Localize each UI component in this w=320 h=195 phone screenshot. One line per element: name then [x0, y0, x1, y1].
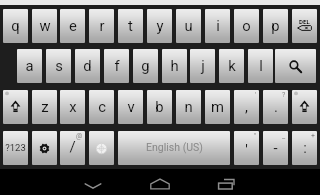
staticText: a	[25, 57, 34, 74]
staticText: DEL	[299, 18, 310, 25]
button[interactable]: v	[118, 90, 143, 124]
staticText: n	[184, 98, 193, 115]
staticText: English (US)	[146, 141, 203, 153]
button[interactable]: /	[60, 131, 85, 165]
button[interactable]: English (US)	[118, 131, 230, 165]
staticText: -	[273, 139, 278, 156]
button[interactable]: Search	[275, 49, 316, 83]
staticText: w	[39, 17, 51, 34]
staticText: i	[216, 17, 220, 34]
staticText: f	[114, 57, 120, 74]
staticText: @	[76, 132, 83, 140]
button[interactable]: Settings	[32, 131, 57, 165]
staticText: v	[127, 98, 135, 115]
staticText: h	[170, 57, 179, 74]
button[interactable]: b	[147, 90, 172, 124]
button[interactable]: u	[176, 9, 201, 43]
staticText: ?123	[5, 142, 26, 153]
button[interactable]: a	[17, 49, 42, 83]
button[interactable]: f	[104, 49, 129, 83]
button[interactable]: i	[205, 9, 230, 43]
button[interactable]: x	[60, 90, 85, 124]
staticText: .	[274, 98, 278, 115]
staticText: k	[228, 57, 236, 74]
button[interactable]: c	[89, 90, 114, 124]
button[interactable]: o	[234, 9, 259, 43]
button[interactable]: m	[205, 90, 230, 124]
button[interactable]: -	[263, 131, 288, 165]
staticText: +	[311, 132, 315, 140]
button[interactable]: g	[133, 49, 158, 83]
button[interactable]: s	[46, 49, 71, 83]
staticText: e	[69, 17, 77, 34]
button[interactable]: Shift	[292, 90, 317, 124]
staticText: d	[83, 57, 92, 74]
button[interactable]: n	[176, 90, 201, 124]
staticText: c	[98, 98, 106, 115]
staticText: p	[271, 17, 280, 34]
staticText: '	[255, 91, 257, 99]
staticText: m	[211, 98, 224, 115]
button[interactable]: t	[118, 9, 143, 43]
button[interactable]: :	[292, 131, 317, 165]
staticText: b	[155, 98, 164, 115]
button[interactable]: y	[147, 9, 172, 43]
staticText: u	[184, 17, 193, 34]
button[interactable]: Delete	[292, 9, 317, 43]
staticText: z	[41, 98, 49, 115]
button[interactable]: q	[3, 9, 28, 43]
staticText: o	[242, 17, 251, 34]
staticText: j	[201, 57, 205, 74]
button[interactable]: ,	[234, 90, 259, 124]
staticText: '	[245, 141, 248, 158]
staticText: ?	[282, 91, 286, 99]
staticText: :	[303, 139, 307, 156]
button[interactable]: Change keyboard	[89, 131, 114, 165]
staticText: "	[254, 132, 257, 140]
staticText: _	[282, 132, 286, 140]
staticText: ,	[245, 98, 248, 115]
staticText: q	[11, 17, 20, 34]
button[interactable]: r	[89, 9, 114, 43]
button[interactable]: Shift	[3, 90, 28, 124]
button[interactable]: l	[248, 49, 273, 83]
button[interactable]: j	[190, 49, 215, 83]
button[interactable]: Home	[144, 173, 176, 195]
button[interactable]: .	[263, 90, 288, 124]
button[interactable]: h	[162, 49, 187, 83]
staticText: y	[156, 17, 164, 34]
staticText: g	[141, 57, 150, 74]
button[interactable]: Recent apps	[210, 173, 242, 195]
button[interactable]: k	[219, 49, 244, 83]
button[interactable]: '	[234, 131, 259, 165]
staticText: r	[99, 17, 105, 34]
button[interactable]: z	[32, 90, 57, 124]
staticText: x	[69, 98, 77, 115]
staticText: s	[55, 57, 63, 74]
button[interactable]: d	[75, 49, 100, 83]
staticText: l	[259, 57, 263, 74]
button[interactable]: e	[60, 9, 85, 43]
button[interactable]: Hide keyboard	[77, 173, 109, 195]
button[interactable]: ?123	[3, 131, 28, 165]
staticText: /	[69, 138, 76, 156]
staticText: t	[128, 17, 133, 34]
button[interactable]: p	[263, 9, 288, 43]
button[interactable]: w	[32, 9, 57, 43]
